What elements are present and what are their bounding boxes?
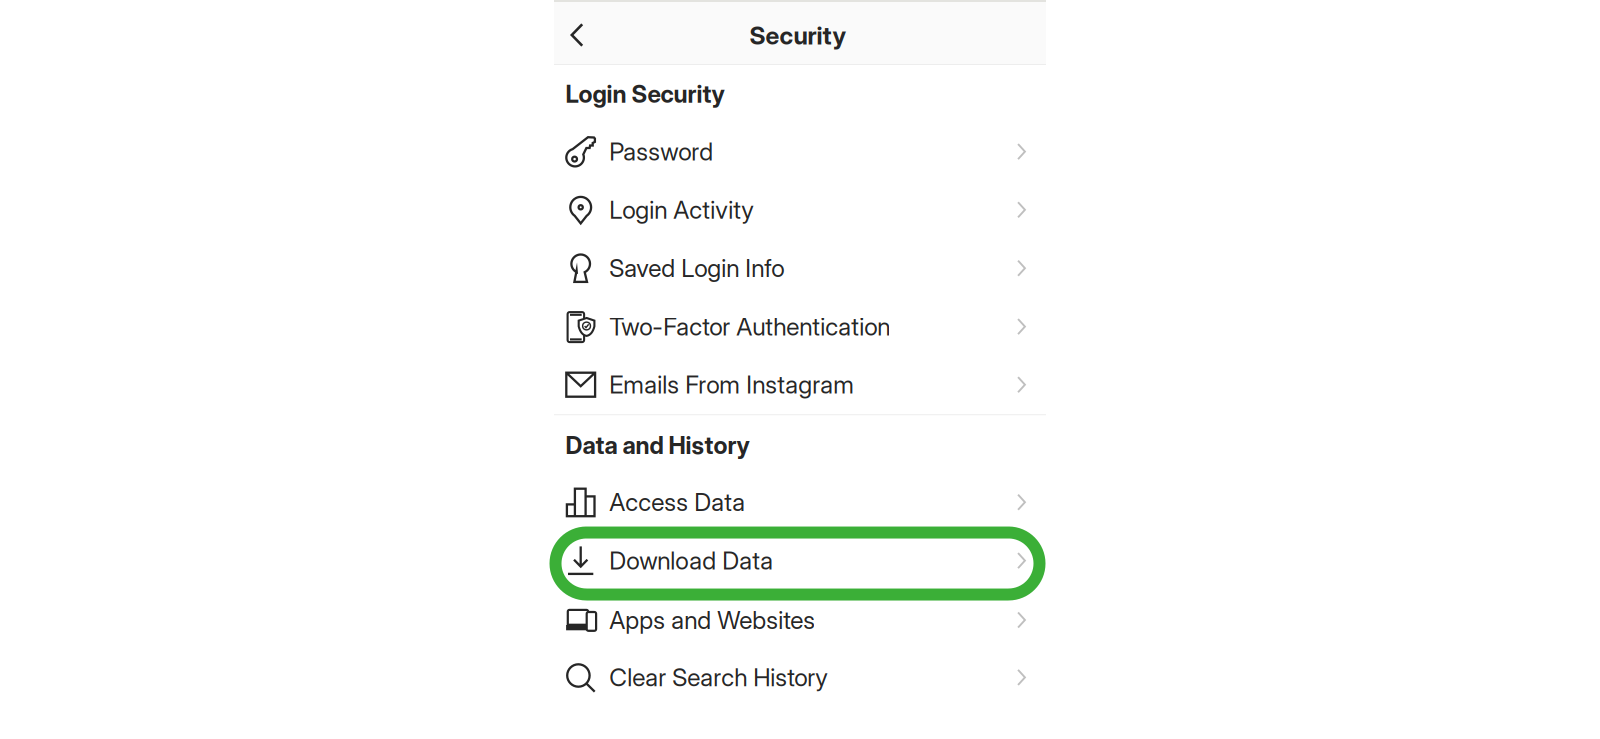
staticText: Login Security xyxy=(565,80,724,109)
staticText: Clear Search History xyxy=(609,663,828,692)
staticText: Security xyxy=(749,21,846,50)
staticText: Login Activity xyxy=(609,195,754,225)
button[interactable]: Two-Factor Authentication xyxy=(554,298,1046,356)
staticText: Saved Login Info xyxy=(609,253,784,283)
button[interactable]: Login Activity xyxy=(554,181,1046,239)
staticText: Two-Factor Authentication xyxy=(609,312,890,341)
button[interactable]: Download Data xyxy=(554,532,1046,590)
staticText: Emails From Instagram xyxy=(609,370,854,400)
button[interactable]: Emails From Instagram xyxy=(554,356,1046,414)
button[interactable]: Apps and Websites xyxy=(554,591,1046,649)
button[interactable]: Saved Login Info xyxy=(554,239,1046,297)
staticText: Data and History xyxy=(565,431,749,460)
staticText: Access Data xyxy=(609,487,745,517)
staticText: Apps and Websites xyxy=(609,605,815,635)
button[interactable]: Back xyxy=(553,11,601,59)
button[interactable]: Access Data xyxy=(554,473,1046,531)
staticText: Password xyxy=(609,137,713,166)
button[interactable]: Clear Search History xyxy=(554,648,1046,706)
staticText: Download Data xyxy=(609,546,773,575)
button[interactable]: Password xyxy=(554,123,1046,181)
